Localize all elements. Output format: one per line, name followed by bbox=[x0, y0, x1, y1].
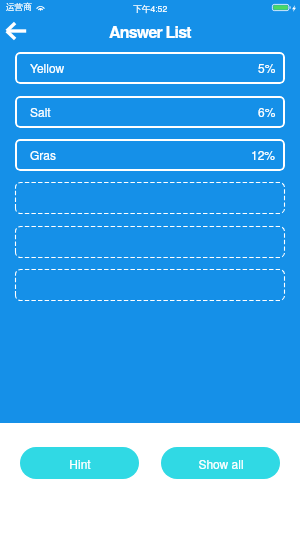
staticText: 6% bbox=[258, 103, 276, 120]
staticText: Salt bbox=[30, 103, 51, 120]
button[interactable] bbox=[15, 226, 285, 258]
staticText: Gras bbox=[30, 146, 56, 163]
button[interactable]: Gras bbox=[15, 139, 285, 171]
button[interactable] bbox=[15, 269, 285, 301]
button[interactable]: Show all bbox=[161, 447, 280, 479]
button[interactable]: Hint bbox=[20, 447, 139, 479]
staticText: 5% bbox=[258, 59, 276, 76]
staticText: 下午4:52 bbox=[133, 2, 168, 15]
staticText: Answer List bbox=[109, 20, 191, 43]
staticText: 运营商 bbox=[6, 2, 32, 13]
button[interactable]: Yellow bbox=[15, 52, 285, 84]
staticText: Yellow bbox=[30, 59, 65, 76]
button[interactable] bbox=[15, 182, 285, 214]
staticText: Show all bbox=[198, 455, 244, 472]
button[interactable]: Back bbox=[0, 18, 32, 44]
staticText: 12% bbox=[251, 146, 276, 163]
staticText: Hint bbox=[69, 455, 91, 472]
button[interactable]: Salt bbox=[15, 96, 285, 128]
